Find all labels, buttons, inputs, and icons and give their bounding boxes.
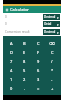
button[interactable]: E: [18, 48, 31, 57]
staticText: ▾: [57, 23, 59, 26]
staticText: .: [24, 86, 26, 91]
button[interactable]: Decimal: [43, 29, 60, 35]
button[interactable]: 5: [18, 66, 31, 75]
staticText: =: [37, 86, 40, 91]
button[interactable]: 1: [5, 75, 18, 84]
staticText: Decimal: [44, 15, 57, 19]
staticText: 9: [37, 59, 40, 64]
staticText: 1: [10, 77, 13, 82]
staticText: /: [51, 59, 53, 64]
staticText: 0: [10, 86, 13, 91]
button[interactable]: -: [45, 75, 59, 84]
button[interactable]: A: [5, 38, 18, 48]
staticText: 3: [37, 77, 40, 82]
staticText: 0: [5, 22, 43, 26]
button[interactable]: D: [5, 48, 18, 57]
staticText: +: [51, 86, 54, 91]
button[interactable]: 4: [5, 66, 18, 75]
staticText: 6: [37, 68, 40, 73]
button[interactable]: +: [45, 84, 59, 93]
button[interactable]: ⌫: [45, 38, 59, 48]
staticText: 2: [23, 77, 26, 82]
button[interactable]: /: [45, 57, 59, 66]
staticText: D: [10, 50, 13, 55]
staticText: C: [51, 50, 54, 55]
staticText: 7: [10, 59, 13, 64]
button[interactable]: 6: [31, 66, 45, 75]
staticText: 0: [5, 15, 43, 19]
button[interactable]: Octal: [43, 21, 60, 27]
staticText: *: [51, 68, 54, 73]
staticText: ▾: [57, 31, 59, 34]
button[interactable]: 7: [5, 57, 18, 66]
button[interactable]: Decimal: [43, 14, 60, 20]
staticText: -: [51, 77, 53, 82]
button[interactable]: B: [18, 38, 31, 48]
staticText: F: [37, 50, 40, 55]
button[interactable]: .: [18, 84, 31, 93]
button[interactable]: 0: [5, 84, 18, 93]
button[interactable]: 9: [31, 57, 45, 66]
staticText: 5: [23, 68, 26, 73]
button[interactable]: F: [31, 48, 45, 57]
staticText: Decimal: [44, 30, 57, 34]
staticText: B: [23, 41, 26, 46]
staticText: Conversion result: [5, 30, 43, 34]
staticText: A: [10, 41, 13, 46]
staticText: ▾: [57, 16, 59, 19]
button[interactable]: *: [45, 66, 59, 75]
staticText: ⌫: [49, 41, 55, 46]
button[interactable]: Menu: [5, 8, 9, 12]
staticText: 8: [23, 59, 26, 64]
staticText: C: [37, 41, 40, 46]
staticText: Calculator: [10, 7, 29, 12]
staticText: 4: [10, 68, 13, 73]
button[interactable]: C: [45, 48, 59, 57]
button[interactable]: =: [31, 84, 45, 93]
button[interactable]: 3: [31, 75, 45, 84]
button[interactable]: C: [31, 38, 45, 48]
button[interactable]: 2: [18, 75, 31, 84]
button[interactable]: 8: [18, 57, 31, 66]
staticText: E: [23, 50, 26, 55]
staticText: Octal: [44, 22, 57, 26]
